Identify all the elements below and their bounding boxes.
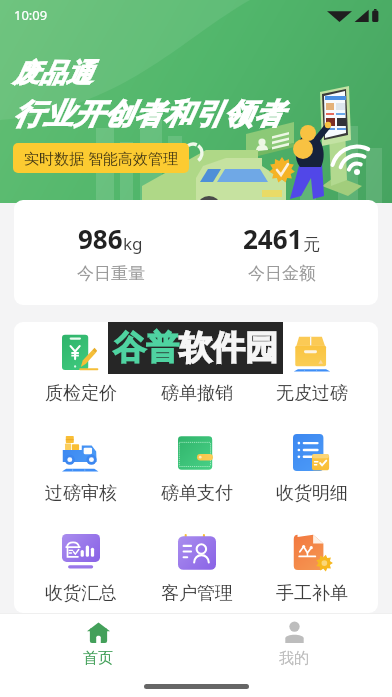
- staticText: 磅单撤销: [161, 382, 233, 405]
- button[interactable]: 无皮过磅: [254, 334, 369, 405]
- other: Home indicator: [144, 684, 249, 689]
- staticText: 行业开创者和引领者: [13, 96, 283, 133]
- staticText: 过磅审核: [45, 482, 117, 505]
- staticText: 我的: [279, 649, 309, 668]
- staticText: 谷普: [113, 327, 179, 369]
- staticText: 实时数据 智能高效管理: [24, 148, 178, 168]
- button[interactable]: 首页: [0, 622, 196, 668]
- button[interactable]: 过磅审核: [23, 434, 139, 505]
- staticText: 10:09: [14, 6, 48, 24]
- button[interactable]: 我的: [196, 622, 392, 668]
- button[interactable]: 磅单撤销: [139, 334, 254, 405]
- staticText: 质检定价: [45, 382, 117, 405]
- staticText: 磅单支付: [161, 482, 233, 505]
- button[interactable]: 磅单支付: [139, 434, 254, 505]
- staticText: 手工补单: [276, 582, 348, 605]
- staticText: 软件园: [179, 327, 278, 369]
- button[interactable]: 收货汇总: [23, 534, 139, 605]
- button[interactable]: 收货明细: [254, 434, 369, 505]
- staticText: 首页: [83, 649, 113, 668]
- staticText: 今日金额: [248, 263, 316, 284]
- button[interactable]: 客户管理: [139, 534, 254, 605]
- staticText: 986: [78, 221, 123, 256]
- staticText: 元: [303, 234, 320, 255]
- staticText: 今日重量: [77, 263, 145, 284]
- staticText: 收货汇总: [45, 582, 117, 605]
- staticText: 收货明细: [276, 482, 348, 505]
- staticText: kg: [123, 232, 143, 255]
- button[interactable]: 手工补单: [254, 534, 369, 605]
- staticText: 客户管理: [161, 582, 233, 605]
- staticText: 2461: [243, 221, 303, 256]
- button[interactable]: 质检定价: [23, 334, 139, 405]
- staticText: 废品通: [13, 57, 93, 90]
- staticText: 无皮过磅: [276, 382, 348, 405]
